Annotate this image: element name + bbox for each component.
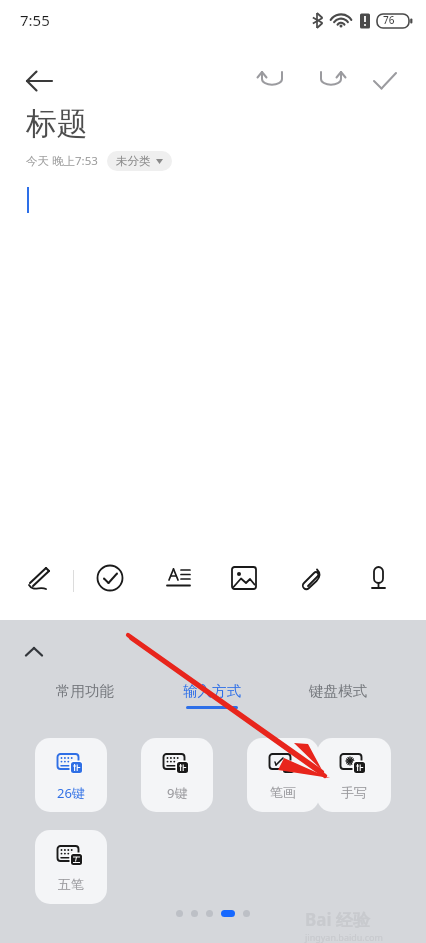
button[interactable]: 手写	[317, 738, 391, 812]
staticText: 26键	[57, 784, 85, 802]
button[interactable]: 26键	[35, 738, 107, 812]
staticText: 标题	[26, 104, 88, 143]
staticText: 7:55	[20, 10, 50, 30]
button[interactable]: 常用功能	[43, 682, 127, 706]
button[interactable]: 笔画	[247, 738, 319, 812]
staticText: 常用功能	[56, 682, 114, 700]
button[interactable]: Text format	[155, 556, 199, 600]
staticText: 未分类	[116, 154, 151, 168]
staticText: 今天 晚上7:53	[26, 153, 98, 169]
staticText: jingyan.baidu.com	[305, 931, 383, 943]
button[interactable]: Attach file	[289, 556, 333, 600]
staticText: 输入方式	[183, 682, 241, 700]
button[interactable]: Back	[18, 58, 64, 104]
button[interactable]: Done	[362, 58, 408, 104]
button[interactable]: Redo	[309, 58, 355, 104]
staticText: 五笔	[58, 876, 84, 892]
button[interactable]: 9键	[141, 738, 213, 812]
button[interactable]: 未分类	[107, 151, 172, 171]
button[interactable]: Undo	[250, 58, 296, 104]
staticText: 9键	[167, 784, 188, 802]
staticText: 键盘模式	[309, 682, 367, 700]
staticText: 76	[383, 13, 395, 27]
button[interactable]: 五笔	[35, 830, 107, 904]
button[interactable]: 键盘模式	[296, 682, 380, 706]
button[interactable]: Collapse	[14, 636, 54, 676]
button[interactable]: Insert image	[222, 556, 266, 600]
button[interactable]: Handwriting	[18, 556, 62, 600]
staticText: Bai 经验	[305, 908, 370, 931]
staticText: 手写	[341, 784, 367, 800]
button[interactable]: 输入方式	[170, 682, 254, 709]
staticText: 笔画	[270, 784, 296, 800]
button[interactable]: Voice input	[356, 556, 400, 600]
button[interactable]: Checklist	[88, 556, 132, 600]
